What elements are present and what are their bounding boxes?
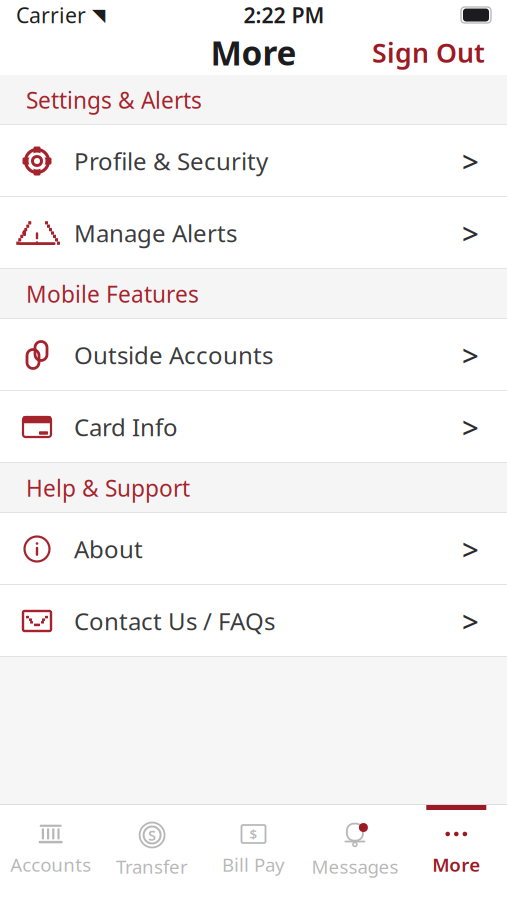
button[interactable]: Outside Accounts bbox=[0, 319, 507, 391]
button[interactable]: Manage Alerts bbox=[0, 197, 507, 269]
staticText: About bbox=[74, 533, 143, 565]
button[interactable]: More bbox=[406, 805, 507, 900]
staticText: Transfer bbox=[116, 854, 188, 879]
staticText: > bbox=[462, 141, 479, 180]
staticText: Mobile Features bbox=[26, 279, 199, 309]
staticText: $ bbox=[249, 825, 257, 843]
staticText: > bbox=[462, 335, 479, 374]
button[interactable]: S bbox=[101, 805, 203, 900]
button[interactable]: Profile & Security bbox=[0, 125, 507, 197]
staticText: > bbox=[462, 529, 479, 568]
staticText: Outside Accounts bbox=[74, 339, 273, 371]
staticText: Settings & Alerts bbox=[26, 85, 202, 115]
staticText: Manage Alerts bbox=[74, 217, 237, 249]
staticText: > bbox=[462, 407, 479, 446]
button[interactable]: Messages bbox=[304, 805, 406, 900]
button[interactable]: Contact Us / FAQs bbox=[0, 585, 507, 657]
staticText: > bbox=[462, 213, 479, 252]
button[interactable]: Card Info bbox=[0, 391, 507, 463]
staticText: 2:22 PM bbox=[243, 1, 324, 29]
staticText: Contact Us / FAQs bbox=[74, 605, 275, 637]
staticText: Profile & Security bbox=[74, 145, 268, 177]
button[interactable]: Sign Out bbox=[372, 27, 507, 78]
staticText: Sign Out bbox=[372, 35, 485, 70]
button[interactable]: About bbox=[0, 513, 507, 585]
staticText: More bbox=[210, 30, 296, 75]
staticText: Bill Pay bbox=[222, 852, 285, 877]
staticText: Messages bbox=[311, 854, 398, 879]
staticText: > bbox=[462, 601, 479, 640]
staticText: Accounts bbox=[10, 852, 91, 877]
staticText: Carrier bbox=[16, 1, 86, 29]
button[interactable]: $ bbox=[203, 805, 304, 900]
staticText: ◥ bbox=[92, 5, 105, 25]
staticText: Card Info bbox=[74, 411, 178, 443]
staticText: S bbox=[148, 825, 156, 845]
button[interactable]: Accounts bbox=[0, 805, 101, 900]
staticText: More bbox=[432, 852, 480, 877]
staticText: Help & Support bbox=[26, 473, 190, 503]
